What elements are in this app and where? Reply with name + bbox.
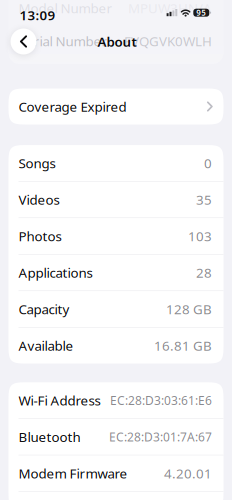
staticText: 28 xyxy=(196,264,212,281)
staticText: About xyxy=(97,33,136,50)
staticText: Model Number xyxy=(18,0,112,17)
staticText: 4.20.01 xyxy=(164,464,212,482)
staticText: Serial Number xyxy=(18,32,107,50)
staticText: Wi-Fi Address xyxy=(18,391,100,409)
button[interactable]: Back xyxy=(10,28,36,54)
staticText: Available xyxy=(18,337,73,354)
staticText: Videos xyxy=(18,191,59,208)
staticText: Modem Firmware xyxy=(18,464,127,482)
staticText: 103 xyxy=(188,227,212,245)
staticText: Applications xyxy=(18,264,92,281)
staticText: FVQGVK0WLH xyxy=(124,32,212,50)
staticText: 13:09 xyxy=(19,6,55,24)
staticText: 0 xyxy=(204,154,212,172)
staticText: Bluetooth xyxy=(18,428,80,446)
staticText: 95 xyxy=(196,7,206,18)
staticText: MPUW3HN/A xyxy=(128,0,212,17)
staticText: Coverage Expired xyxy=(18,98,126,115)
button[interactable]: Coverage Expired xyxy=(8,88,223,124)
staticText: 35 xyxy=(196,191,212,208)
staticText: EC:28:D3:03:61:E6 xyxy=(110,392,212,408)
staticText: Songs xyxy=(18,154,55,172)
staticText: 128 GB xyxy=(166,300,212,318)
staticText: EC:28:D3:01:7A:67 xyxy=(109,429,212,445)
staticText: Photos xyxy=(18,227,61,245)
staticText: 16.81 GB xyxy=(154,337,212,354)
staticText: Capacity xyxy=(18,300,69,318)
